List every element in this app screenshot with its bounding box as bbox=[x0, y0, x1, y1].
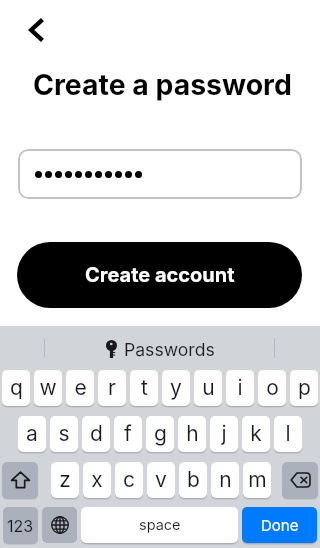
staticText: i bbox=[237, 375, 243, 400]
staticText: t bbox=[141, 375, 148, 400]
button[interactable]: u bbox=[194, 370, 222, 406]
button[interactable] bbox=[18, 149, 302, 199]
button[interactable]: e bbox=[66, 370, 94, 406]
button[interactable]: Done bbox=[242, 507, 317, 543]
staticText: Create account bbox=[85, 263, 235, 287]
staticText: k bbox=[250, 421, 262, 446]
staticText: q bbox=[10, 375, 23, 400]
button[interactable]: r bbox=[98, 370, 126, 406]
button[interactable]: k bbox=[242, 416, 270, 452]
staticText: space bbox=[139, 516, 181, 534]
staticText: r bbox=[108, 375, 116, 400]
button[interactable]: i bbox=[226, 370, 254, 406]
staticText: o bbox=[266, 375, 279, 400]
staticText: j bbox=[221, 421, 227, 446]
button[interactable]: b bbox=[179, 462, 207, 498]
button[interactable]: x bbox=[83, 462, 111, 498]
staticText: e bbox=[74, 375, 87, 400]
button[interactable]: Create account bbox=[17, 242, 302, 308]
staticText: g bbox=[154, 421, 167, 446]
button[interactable]: 123 bbox=[3, 507, 38, 543]
staticText: x bbox=[91, 467, 103, 492]
staticText: Done bbox=[261, 516, 299, 534]
staticText: 123 bbox=[7, 516, 34, 535]
staticText: Create a password bbox=[33, 67, 292, 101]
button[interactable]: g bbox=[146, 416, 174, 452]
staticText: h bbox=[186, 421, 199, 446]
button[interactable]: d bbox=[82, 416, 110, 452]
button[interactable]: m bbox=[243, 462, 271, 498]
staticText: d bbox=[90, 421, 103, 446]
staticText: y bbox=[170, 375, 182, 400]
button[interactable]: t bbox=[130, 370, 158, 406]
button[interactable]: z bbox=[51, 462, 79, 498]
staticText: Passwords bbox=[124, 339, 215, 360]
button[interactable]: s bbox=[50, 416, 78, 452]
button[interactable]: j bbox=[210, 416, 238, 452]
button[interactable]: v bbox=[147, 462, 175, 498]
button[interactable]: a bbox=[18, 416, 46, 452]
button[interactable]: n bbox=[211, 462, 239, 498]
button[interactable]: o bbox=[258, 370, 286, 406]
button[interactable]: f bbox=[114, 416, 142, 452]
button[interactable]: w bbox=[34, 370, 62, 406]
button[interactable]: h bbox=[178, 416, 206, 452]
staticText: w bbox=[39, 375, 57, 400]
staticText: b bbox=[187, 467, 200, 492]
button[interactable]: l bbox=[274, 416, 302, 452]
staticText: c bbox=[123, 467, 135, 492]
staticText: z bbox=[59, 467, 71, 492]
staticText: f bbox=[124, 421, 132, 446]
button[interactable]: Back bbox=[17, 12, 53, 48]
button[interactable]: q bbox=[2, 370, 30, 406]
button[interactable]: p bbox=[290, 370, 318, 406]
button[interactable]: Passwords bbox=[0, 337, 320, 361]
staticText: u bbox=[202, 375, 215, 400]
button[interactable]: Delete bbox=[282, 462, 318, 498]
staticText: s bbox=[58, 421, 70, 446]
button[interactable]: c bbox=[115, 462, 143, 498]
staticText: v bbox=[155, 467, 167, 492]
button[interactable]: Shift bbox=[2, 462, 38, 498]
button[interactable]: Change keyboard bbox=[42, 507, 77, 543]
button[interactable]: y bbox=[162, 370, 190, 406]
staticText: p bbox=[298, 375, 311, 400]
staticText: a bbox=[26, 421, 38, 446]
staticText: l bbox=[285, 421, 291, 446]
staticText: n bbox=[219, 467, 232, 492]
button[interactable]: space bbox=[81, 507, 238, 543]
staticText: m bbox=[248, 467, 267, 492]
